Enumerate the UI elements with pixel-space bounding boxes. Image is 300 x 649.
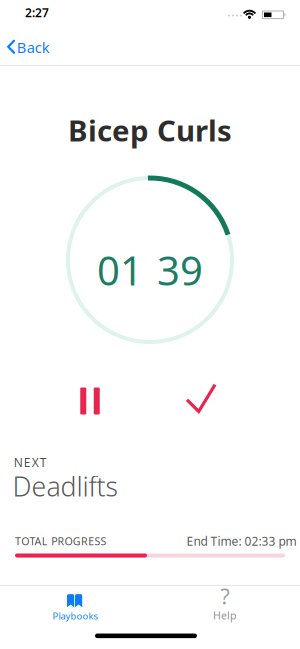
staticText: Help — [213, 608, 237, 622]
staticText: End Time: 02:33 pm — [186, 533, 296, 549]
staticText: Playbooks — [52, 610, 97, 622]
staticText: TOTAL PROGRESS — [15, 534, 107, 548]
staticText: ? — [220, 582, 229, 610]
staticText: 39 — [157, 243, 203, 296]
button[interactable]: Back — [1, 32, 57, 62]
button[interactable]: Pause — [75, 384, 105, 418]
staticText: NEXT — [14, 454, 47, 470]
staticText: 2:27 — [25, 4, 49, 20]
button[interactable]: ? — [150, 586, 300, 649]
button[interactable]: Complete exercise — [185, 382, 217, 414]
staticText: Deadlifts — [12, 468, 118, 504]
button[interactable]: Playbooks — [0, 586, 150, 649]
staticText: 01 — [97, 243, 143, 296]
staticText: Back — [17, 38, 50, 57]
staticText: Bicep Curls — [68, 110, 232, 149]
